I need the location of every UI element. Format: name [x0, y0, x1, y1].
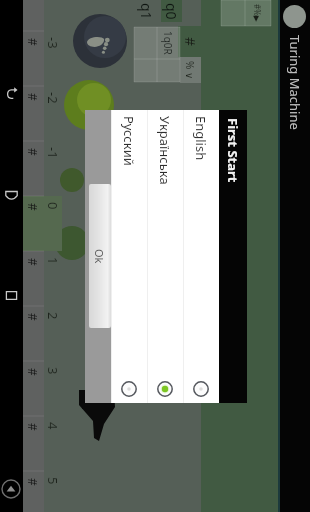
staticText: Русский — [120, 116, 138, 166]
staticText: First Start — [224, 118, 242, 183]
staticText: # — [25, 258, 41, 266]
staticText: #%▶ — [252, 4, 263, 22]
staticText: 5 — [44, 477, 62, 485]
staticText: % ∨ — [183, 61, 197, 80]
staticText: Turing Machine — [286, 35, 304, 130]
button[interactable]: English — [184, 110, 219, 403]
button[interactable]: Back — [0, 73, 23, 113]
staticText: 4 — [44, 422, 62, 430]
staticText: English — [192, 116, 210, 161]
staticText: # — [25, 93, 41, 101]
staticText: 2 — [44, 312, 62, 320]
button[interactable]: Home — [0, 174, 23, 214]
button[interactable]: 1q0R — [157, 27, 180, 59]
staticText: # — [25, 313, 41, 321]
staticText: # — [181, 37, 200, 47]
staticText: # — [25, 478, 41, 486]
staticText: Ok — [92, 249, 107, 264]
button[interactable]: Українська — [148, 110, 183, 403]
staticText: q0 — [162, 3, 181, 20]
staticText: 1 — [44, 257, 62, 265]
staticText: -1 — [44, 147, 62, 159]
button[interactable]: App icon — [283, 5, 306, 28]
button[interactable]: Step back — [0, 474, 23, 504]
staticText: -2 — [44, 92, 62, 104]
button[interactable]: % ∨ — [180, 57, 201, 83]
staticText: Українська — [156, 116, 174, 185]
staticText: # — [25, 203, 41, 211]
button[interactable]: Current rule — [221, 0, 271, 26]
staticText: # — [25, 423, 41, 431]
button[interactable]: q1 — [136, 0, 158, 22]
staticText: # — [25, 38, 41, 46]
button[interactable]: q0 — [161, 0, 182, 22]
staticText: # — [25, 368, 41, 376]
button[interactable]: Ok — [89, 184, 111, 328]
staticText: -3 — [44, 37, 62, 49]
staticText: 3 — [44, 367, 62, 375]
button[interactable]: Recent apps — [0, 275, 23, 315]
button[interactable]: # — [178, 26, 203, 57]
staticText: q1 — [137, 3, 156, 20]
staticText: # — [25, 148, 41, 156]
button[interactable]: Русский — [112, 110, 147, 403]
staticText: 1q0R — [161, 31, 175, 55]
staticText: 0 — [44, 202, 62, 210]
